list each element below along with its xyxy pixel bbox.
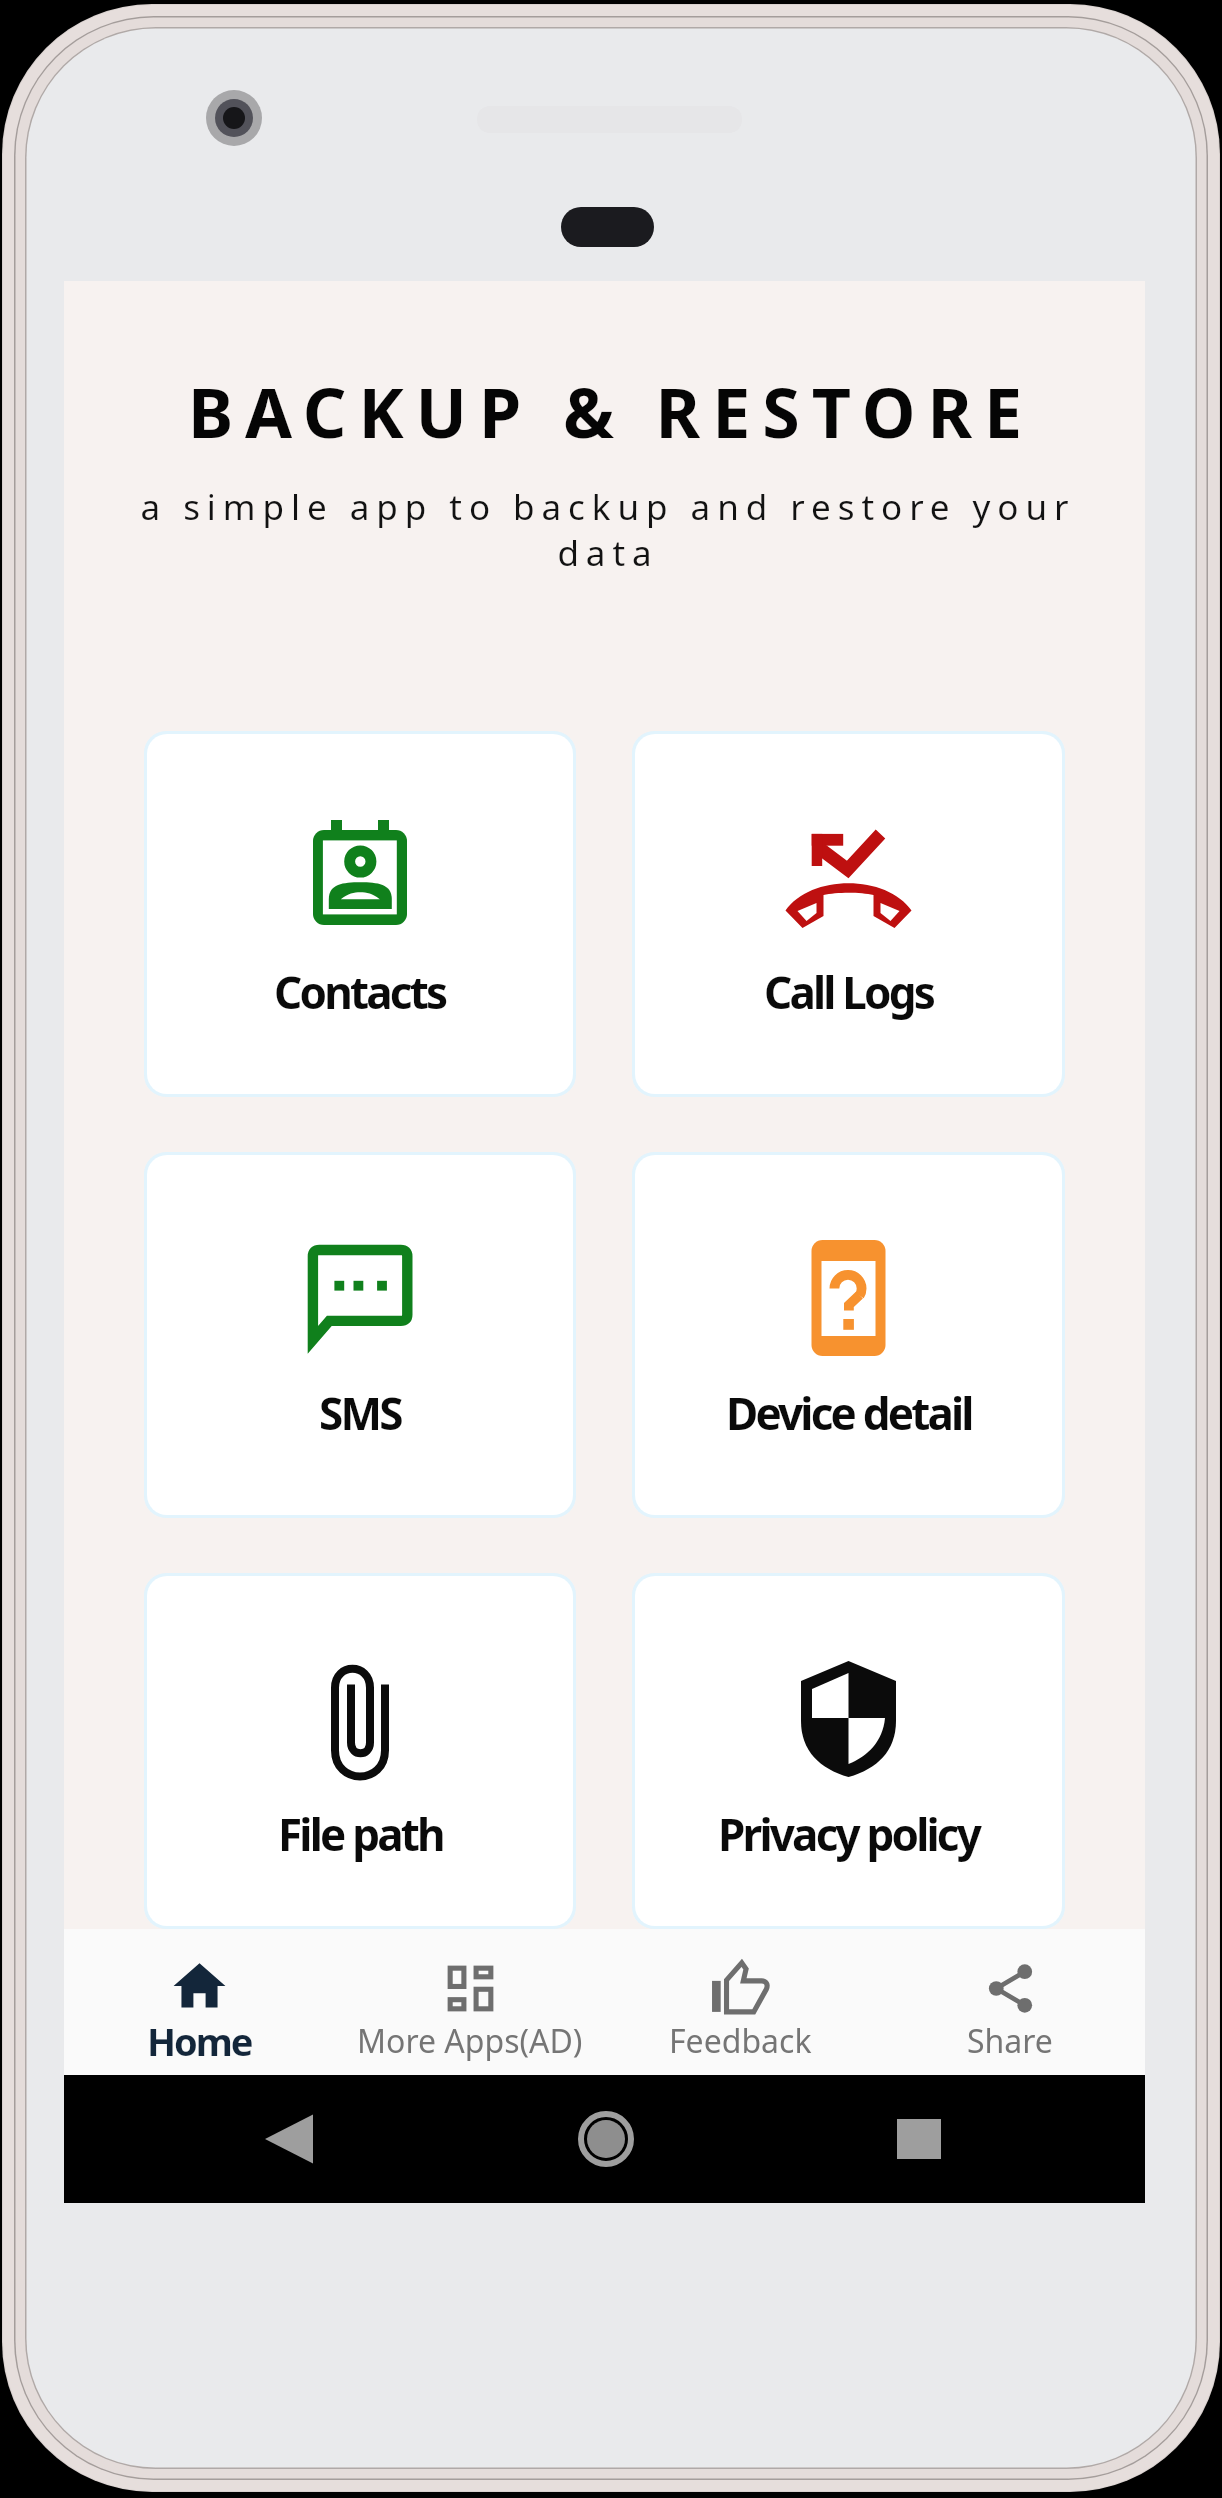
button[interactable]: Home	[543, 2075, 663, 2203]
staticText: Home	[147, 2015, 252, 2067]
staticText: BACKUP & RESTORE	[77, 365, 1145, 458]
staticText: SMS	[319, 1383, 401, 1443]
button[interactable]: Share	[875, 1929, 1145, 2075]
staticText: Share	[967, 2019, 1053, 2063]
button[interactable]: Feedback	[605, 1929, 875, 2075]
button[interactable]: Device detail	[635, 1155, 1062, 1515]
staticText: a simple app to backup and restore your …	[107, 483, 1109, 576]
staticText: Call Logs	[764, 962, 934, 1022]
button[interactable]: File path	[147, 1576, 573, 1926]
staticText: Privacy policy	[718, 1804, 980, 1864]
button[interactable]: Recent apps	[859, 2075, 979, 2203]
staticText: File path	[278, 1804, 443, 1864]
button[interactable]: Call Logs	[635, 734, 1062, 1094]
button[interactable]: More Apps(AD)	[335, 1929, 605, 2075]
staticText: More Apps(AD)	[357, 2019, 583, 2063]
staticText: Contacts	[274, 962, 446, 1022]
button[interactable]: Home	[64, 1929, 335, 2075]
button[interactable]: Privacy policy	[635, 1576, 1062, 1926]
button[interactable]: Back	[228, 2075, 348, 2203]
staticText: Device detail	[726, 1383, 972, 1443]
button[interactable]: SMS	[147, 1155, 573, 1515]
staticText: Feedback	[669, 2019, 812, 2063]
button[interactable]: Contacts	[147, 734, 573, 1094]
